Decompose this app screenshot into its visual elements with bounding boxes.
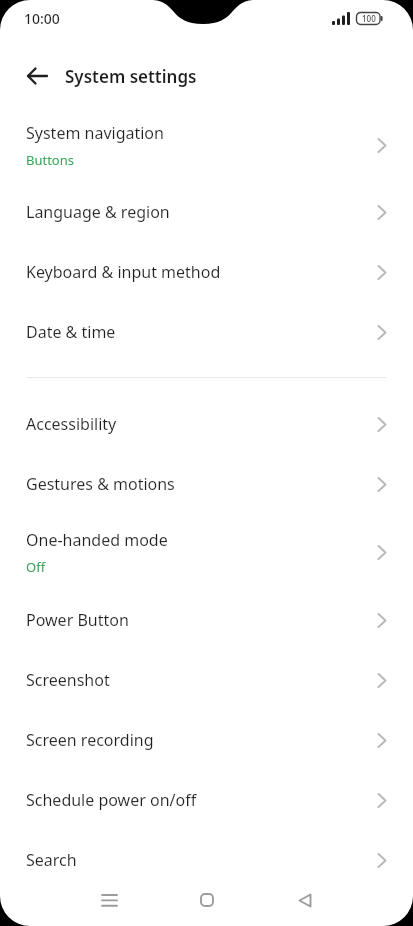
staticText: Off	[26, 558, 46, 576]
button[interactable]	[183, 882, 231, 918]
staticText: 10:00	[24, 9, 60, 28]
staticText: System navigation	[26, 122, 164, 144]
button[interactable]: Gestures & motions	[0, 454, 413, 514]
staticText: Language & region	[26, 201, 170, 223]
button[interactable]: Date & time	[0, 302, 413, 362]
staticText: Buttons	[26, 151, 74, 169]
button[interactable]	[0, 44, 62, 108]
button[interactable]: Accessibility	[0, 394, 413, 454]
staticText: Screen recording	[26, 729, 154, 751]
staticText: System settings	[65, 65, 197, 88]
staticText: Search	[26, 849, 77, 871]
button[interactable]: Power Button	[0, 590, 413, 650]
staticText: Gestures & motions	[26, 473, 175, 495]
button[interactable]: Search	[0, 830, 413, 890]
staticText: Schedule power on/off	[26, 789, 197, 811]
staticText: One-handed mode	[26, 529, 168, 551]
button[interactable]: Keyboard & input method	[0, 242, 413, 302]
staticText: 100	[362, 13, 376, 24]
button[interactable]: Screenshot	[0, 650, 413, 710]
button[interactable]: One-handed mode	[0, 514, 413, 590]
button[interactable]: Screen recording	[0, 710, 413, 770]
staticText: Keyboard & input method	[26, 261, 221, 283]
staticText: Accessibility	[26, 413, 117, 435]
button[interactable]	[85, 882, 133, 918]
button[interactable]	[281, 882, 329, 918]
button[interactable]: Schedule power on/off	[0, 770, 413, 830]
staticText: Date & time	[26, 321, 116, 343]
staticText: Screenshot	[26, 669, 110, 691]
staticText: Power Button	[26, 609, 129, 631]
button[interactable]: System navigation	[0, 108, 413, 182]
button[interactable]: Language & region	[0, 182, 413, 242]
